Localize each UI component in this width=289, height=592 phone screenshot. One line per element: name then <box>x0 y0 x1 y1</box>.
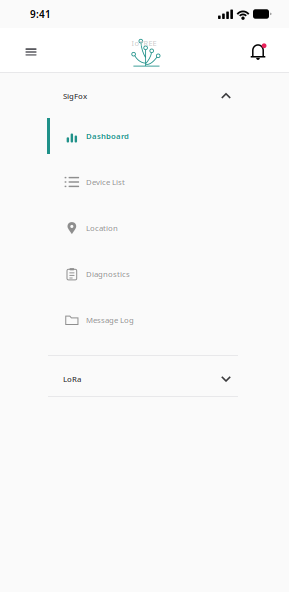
staticText: Diagnostics <box>86 269 130 279</box>
staticText: LoRa <box>63 374 81 384</box>
button[interactable]: LoRa <box>0 362 289 396</box>
button[interactable]: SigFox <box>0 79 289 113</box>
button[interactable]: Message Log <box>0 297 289 343</box>
button[interactable]: Device List <box>0 159 289 205</box>
staticText: Dashboard <box>86 131 129 141</box>
button[interactable]: Dashboard <box>0 113 289 159</box>
button[interactable]: Diagnostics <box>0 251 289 297</box>
button[interactable]: Notifications <box>242 33 276 67</box>
staticText: Location <box>86 223 118 233</box>
staticText: Message Log <box>86 315 134 325</box>
staticText: Device List <box>86 177 125 187</box>
staticText: IoTREE <box>131 38 156 48</box>
staticText: 9:41 <box>30 7 51 21</box>
button[interactable]: Menu <box>14 33 48 67</box>
staticText: SigFox <box>63 91 87 101</box>
button[interactable]: Location <box>0 205 289 251</box>
